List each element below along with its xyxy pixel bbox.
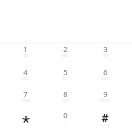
- button[interactable]: 9 WXYZ: [85, 86, 125, 108]
- button[interactable]: 5 JKL: [45, 64, 85, 86]
- staticText: DEF: [102, 53, 109, 58]
- staticText: ABC: [62, 53, 69, 58]
- button[interactable]: 2 ABC: [45, 41, 85, 63]
- staticText: +: [64, 119, 67, 124]
- button[interactable]: 6 MNO: [85, 64, 125, 86]
- staticText: 4: [23, 67, 28, 77]
- button[interactable]: Pound: [85, 107, 125, 129]
- staticText: WXYZ: [100, 98, 110, 103]
- staticText: GHI: [22, 76, 29, 81]
- staticText: 2: [63, 44, 68, 54]
- button[interactable]: 3 DEF: [85, 41, 125, 63]
- staticText: TUV: [62, 98, 69, 103]
- staticText: #: [101, 110, 109, 125]
- staticText: JKL: [62, 76, 68, 81]
- staticText: 3: [103, 44, 108, 54]
- staticText: 6: [103, 67, 108, 77]
- button[interactable]: Star: [6, 107, 45, 129]
- staticText: 1: [23, 44, 28, 54]
- button[interactable]: 0 plus: [45, 107, 85, 129]
- staticText: 7: [23, 89, 28, 99]
- button[interactable]: 4 GHI: [6, 64, 45, 86]
- button[interactable]: 7 PQRS: [6, 86, 45, 108]
- staticText: 8: [63, 89, 68, 99]
- button[interactable]: 8 TUV: [45, 86, 85, 108]
- staticText: MNO: [101, 76, 110, 81]
- staticText: 5: [63, 67, 68, 77]
- button[interactable]: 1 voicemail: [6, 41, 45, 63]
- staticText: 9: [103, 89, 108, 99]
- staticText: PQRS: [21, 98, 31, 103]
- staticText: 0: [63, 110, 68, 120]
